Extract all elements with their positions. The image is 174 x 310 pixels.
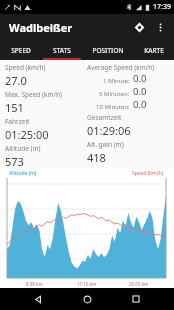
staticText: Max. Speed (km/h) — [5, 90, 62, 99]
staticText: 151 — [5, 100, 24, 115]
staticText: 01:25:00 — [5, 127, 49, 142]
button[interactable]: KARTE — [133, 40, 174, 60]
staticText: Average Speed (km/h) — [87, 63, 155, 72]
staticText: Speed (km/h) — [5, 63, 46, 72]
button[interactable]: STATS — [41, 40, 82, 60]
staticText: 573 — [5, 154, 24, 169]
staticText: 01:29:06 — [87, 123, 131, 138]
button[interactable]: POSITION — [82, 40, 133, 60]
button[interactable]: SPEED — [0, 40, 41, 60]
staticText: 10 Minuten: — [96, 103, 130, 111]
staticText: 25.65 km — [129, 281, 149, 287]
staticText: 27.0 — [5, 73, 27, 88]
staticText: SPEED — [11, 46, 31, 55]
staticText: Wadlbeißer — [9, 20, 73, 35]
button[interactable]: Recent apps — [125, 288, 147, 310]
button[interactable]: More options — [150, 17, 170, 37]
staticText: Altitude (m) — [5, 144, 41, 153]
staticText: 0.0 — [133, 85, 147, 98]
staticText: Altitude (m) — [9, 170, 37, 177]
staticText: 0.0 — [133, 72, 147, 85]
staticText: 17.16 km — [77, 281, 97, 287]
button[interactable]: Home — [76, 288, 98, 310]
staticText: POSITION — [92, 46, 124, 55]
staticText: 17:39 — [153, 2, 171, 12]
staticText: STATS — [53, 46, 71, 55]
staticText: 1 Minute: — [103, 77, 130, 85]
staticText: Speed (km/h) — [132, 170, 164, 177]
button[interactable]: Back — [27, 288, 49, 310]
staticText: 5 Minuten: — [99, 90, 130, 98]
staticText: 0.0 — [133, 98, 147, 111]
staticText: Gesamtzeit — [87, 113, 122, 122]
staticText: 418 — [87, 150, 106, 165]
staticText: Fahrzeit — [5, 117, 30, 126]
staticText: 8.58 km — [26, 281, 43, 287]
staticText: Alt. gain (m) — [87, 140, 124, 149]
button[interactable]: GPS location — [128, 16, 150, 38]
staticText: KARTE — [144, 46, 164, 55]
